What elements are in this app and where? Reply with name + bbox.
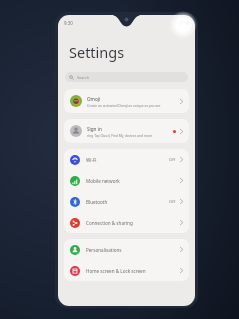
staticText: Sign in xyxy=(87,126,102,132)
staticText: Off xyxy=(169,157,176,163)
button[interactable]: Home screen & Lock screen xyxy=(64,260,189,281)
button[interactable]: Sign in xyxy=(64,119,189,143)
staticText: Omoji xyxy=(87,96,101,102)
staticText: Off xyxy=(169,199,176,205)
staticText: Search xyxy=(77,75,90,80)
button[interactable]: Mobile network xyxy=(64,170,189,191)
staticText: Personalisations xyxy=(86,247,122,253)
button[interactable]: Connection & sharing xyxy=(64,212,189,233)
button[interactable]: Omoji xyxy=(64,89,189,113)
staticText: Bluetooth xyxy=(86,199,108,205)
button[interactable]: Personalisations xyxy=(64,239,189,260)
button[interactable]: Bluetooth xyxy=(64,191,189,212)
button[interactable]: Search settings xyxy=(65,72,188,82)
staticText: Home screen & Lock screen xyxy=(86,268,146,274)
staticText: 9:30 xyxy=(64,20,73,26)
staticText: ring Tap Cloud, Find My, devices and mor… xyxy=(87,133,153,137)
staticText: Connection & sharing xyxy=(86,220,133,226)
button[interactable]: Wi-Fi xyxy=(64,149,189,170)
staticText: Mobile network xyxy=(86,178,120,184)
staticText: Wi-Fi xyxy=(86,157,97,163)
staticText: Settings xyxy=(69,42,125,62)
staticText: Create an animated Omoji as unique as yo… xyxy=(87,103,161,107)
